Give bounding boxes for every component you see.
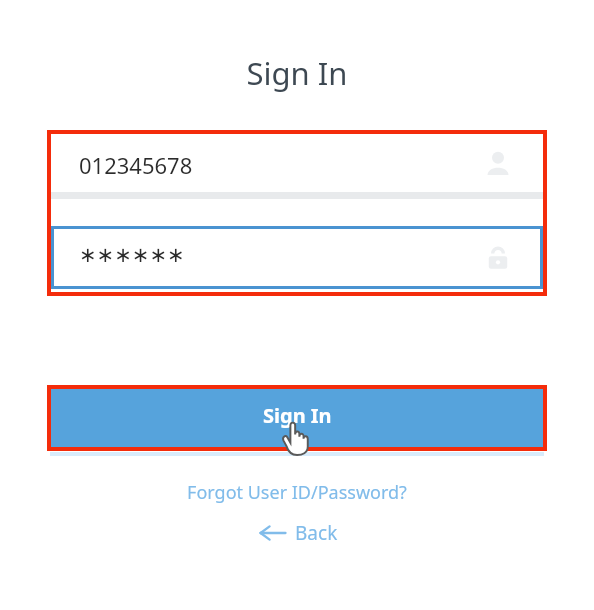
button[interactable]: Back xyxy=(251,517,344,549)
button[interactable]: Sign In xyxy=(51,389,543,447)
staticText: Back xyxy=(295,520,338,546)
staticText: Sign In xyxy=(0,52,594,94)
staticText: Forgot User ID/Password? xyxy=(187,480,407,505)
staticText: Sign In xyxy=(263,402,332,429)
other: Back xyxy=(257,522,287,544)
button[interactable]: 012345678 xyxy=(51,134,543,199)
button[interactable]: ∗∗∗∗∗∗ xyxy=(54,229,540,286)
other: User xyxy=(483,149,513,179)
button[interactable]: Forgot User ID/Password? xyxy=(0,477,594,507)
staticText: 012345678 xyxy=(79,150,193,180)
staticText: ∗∗∗∗∗∗ xyxy=(79,243,185,267)
other: Password xyxy=(484,244,512,272)
